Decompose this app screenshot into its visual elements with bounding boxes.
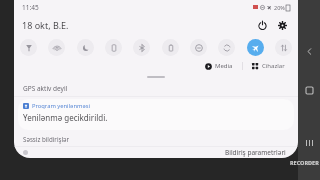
staticText: Yenilənmə gecikdirildi. xyxy=(23,112,108,123)
button[interactable]: Bildiriş parametrləri xyxy=(222,147,289,158)
button[interactable]: Back xyxy=(302,44,316,58)
button[interactable]: Settings xyxy=(274,17,290,33)
button[interactable]: Auto rotate xyxy=(105,39,122,56)
button[interactable]: Power xyxy=(254,17,270,33)
button[interactable]: Battery saver xyxy=(162,39,179,56)
button[interactable]: Do not disturb xyxy=(77,39,94,56)
button[interactable]: Flashlight xyxy=(20,39,37,56)
button[interactable]: Airplane mode xyxy=(247,39,264,56)
button[interactable]: Sync xyxy=(218,39,235,56)
button[interactable]: Media xyxy=(202,61,236,71)
staticText: Proqram yenilənməsi xyxy=(32,102,90,110)
staticText: Cihazlar xyxy=(262,62,285,70)
staticText: 18 okt, B.E. xyxy=(22,19,69,31)
button[interactable]: Mobile data xyxy=(275,39,292,56)
staticText: RECORDER xyxy=(290,159,319,166)
staticText: Səssiz bildirişlər xyxy=(23,135,70,143)
staticText: 11:45 xyxy=(22,3,39,12)
button[interactable]: Wi-Fi xyxy=(48,39,65,56)
button[interactable]: Home xyxy=(302,83,316,97)
button[interactable]: Proqram yenilənməsi xyxy=(18,99,294,130)
staticText: Bildiriş parametrləri xyxy=(225,148,286,157)
staticText: Media xyxy=(215,62,233,70)
staticText: 20% xyxy=(274,4,285,11)
button[interactable]: Mute xyxy=(190,39,207,56)
button[interactable]: Recents xyxy=(302,136,316,150)
button[interactable]: GPS aktiv deyil xyxy=(14,80,298,96)
button[interactable]: Bluetooth xyxy=(133,39,150,56)
staticText: GPS aktiv deyil xyxy=(23,84,68,93)
button[interactable]: Cihazlar xyxy=(249,61,288,71)
